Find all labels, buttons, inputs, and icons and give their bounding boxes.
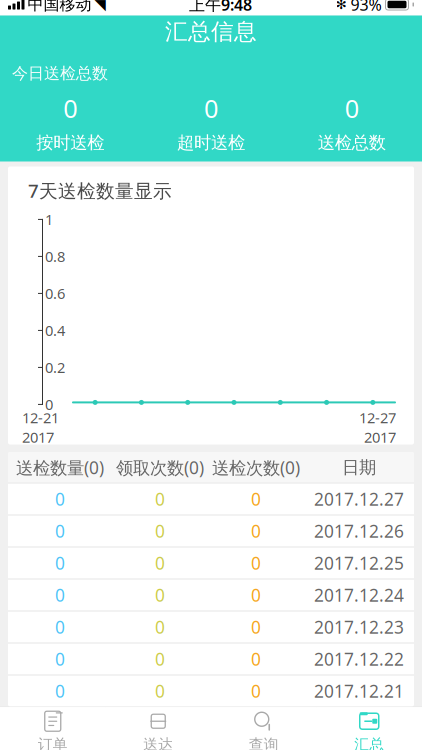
staticText: 汇总信息 bbox=[165, 18, 257, 46]
staticText: 0 bbox=[251, 647, 261, 670]
staticText: 2017.12.22 bbox=[314, 647, 404, 670]
staticText: 0.2 bbox=[45, 358, 65, 377]
staticText: 送检次数(0) bbox=[212, 456, 300, 479]
staticText: 12-21 bbox=[22, 408, 59, 427]
staticText: 2017.12.23 bbox=[314, 615, 404, 638]
staticText: 2017.12.21 bbox=[314, 679, 404, 702]
staticText: 12-27 bbox=[359, 408, 396, 427]
staticText: ◥ bbox=[94, 0, 105, 13]
staticText: 0 bbox=[155, 679, 165, 702]
staticText: 领取次数(0) bbox=[116, 456, 204, 479]
staticText: 0 bbox=[155, 615, 165, 638]
staticText: 0 bbox=[63, 91, 77, 125]
staticText: 2017.12.24 bbox=[314, 583, 404, 606]
staticText: 超时送检 bbox=[177, 132, 245, 153]
staticText: 0 bbox=[251, 487, 261, 510]
staticText: 0 bbox=[55, 551, 65, 574]
button[interactable]: 查询 bbox=[211, 707, 316, 750]
staticText: 0 bbox=[155, 487, 165, 510]
staticText: 送检总数 bbox=[318, 132, 386, 153]
staticText: ✻ bbox=[335, 0, 346, 12]
staticText: 0 bbox=[251, 615, 261, 638]
staticText: 0 bbox=[55, 615, 65, 638]
staticText: 上午9:48 bbox=[189, 0, 252, 15]
staticText: 0 bbox=[155, 551, 165, 574]
staticText: 0 bbox=[251, 551, 261, 574]
staticText: 0 bbox=[251, 519, 261, 542]
button[interactable]: 送达 bbox=[105, 707, 211, 750]
staticText: 0 bbox=[55, 519, 65, 542]
staticText: 2017.12.26 bbox=[314, 519, 404, 542]
staticText: 0 bbox=[251, 679, 261, 702]
staticText: 7天送检数量显示 bbox=[28, 178, 172, 203]
staticText: 2017 bbox=[364, 427, 396, 447]
staticText: 0 bbox=[155, 583, 165, 606]
button[interactable]: 汇总 bbox=[316, 707, 422, 750]
staticText: 今日送检总数 bbox=[12, 64, 108, 83]
staticText: 按时送检 bbox=[36, 132, 104, 153]
staticText: 93% bbox=[350, 0, 381, 15]
staticText: 2017.12.25 bbox=[314, 551, 404, 574]
staticText: 0 bbox=[155, 647, 165, 670]
staticText: 送达 bbox=[143, 735, 173, 750]
staticText: 日期 bbox=[342, 457, 376, 478]
button[interactable]: 订单 bbox=[0, 707, 105, 750]
staticText: 0 bbox=[155, 519, 165, 542]
staticText: 2017 bbox=[22, 427, 54, 447]
staticText: 0.8 bbox=[45, 247, 65, 266]
staticText: 0 bbox=[55, 679, 65, 702]
staticText: 0 bbox=[55, 583, 65, 606]
staticText: 0 bbox=[55, 487, 65, 510]
staticText: 0 bbox=[251, 583, 261, 606]
staticText: 查询 bbox=[249, 735, 279, 750]
staticText: 0 bbox=[55, 647, 65, 670]
staticText: 0.4 bbox=[45, 321, 65, 340]
staticText: 0 bbox=[45, 395, 53, 414]
staticText: 0 bbox=[204, 91, 218, 125]
staticText: 汇总 bbox=[354, 735, 384, 750]
staticText: 2017.12.27 bbox=[314, 487, 404, 510]
staticText: 订单 bbox=[38, 735, 68, 750]
staticText: 送检数量(0) bbox=[16, 456, 104, 479]
staticText: 0 bbox=[345, 91, 359, 125]
staticText: 中国移动 bbox=[27, 0, 91, 14]
staticText: 0.6 bbox=[45, 284, 65, 303]
staticText: 1 bbox=[45, 210, 53, 229]
